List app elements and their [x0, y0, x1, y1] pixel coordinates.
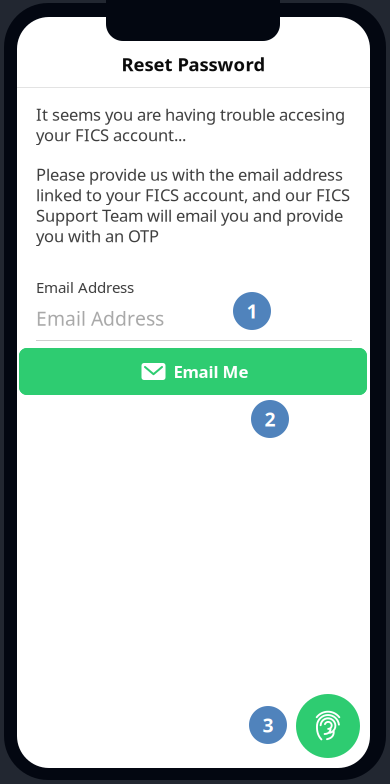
staticText: 3	[262, 712, 273, 738]
staticText: Email Me	[173, 360, 248, 383]
staticText: Email Address	[36, 277, 134, 297]
staticText: Reset Password	[121, 51, 265, 77]
staticText: 1	[246, 298, 257, 324]
staticText: 2	[264, 406, 275, 432]
button[interactable]: Email Me	[19, 348, 367, 395]
button[interactable]: Fingerprint sign in	[296, 694, 360, 758]
staticText: Please provide us with the email address…	[36, 163, 350, 247]
staticText: Email Address	[36, 305, 164, 331]
staticText: It seems you are having trouble accesing…	[36, 103, 345, 146]
